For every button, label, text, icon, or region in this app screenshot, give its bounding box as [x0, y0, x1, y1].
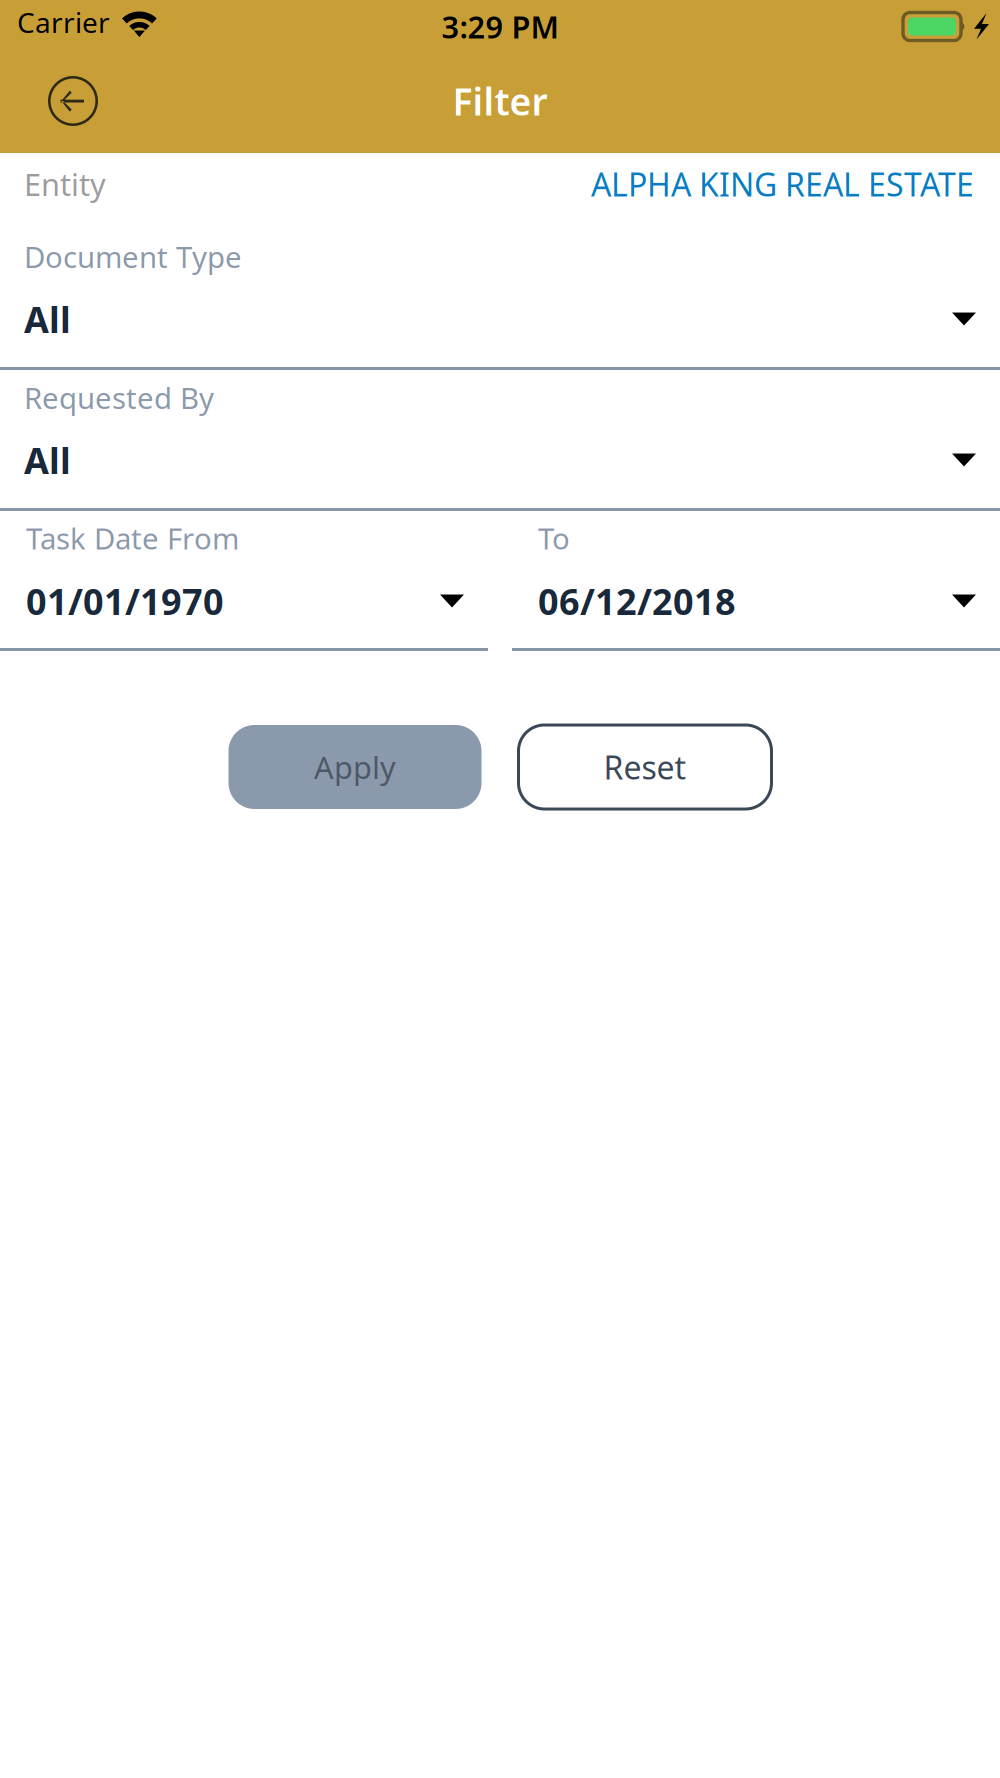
staticText: Entity — [24, 164, 106, 204]
staticText: ALPHA KING REAL ESTATE — [591, 163, 974, 205]
staticText: Task Date From — [26, 518, 239, 557]
button[interactable]: Task Date From — [0, 511, 488, 651]
staticText: 01/01/1970 — [26, 577, 224, 625]
staticText: To — [538, 518, 570, 557]
staticText: Reset — [603, 746, 686, 788]
staticText: All — [24, 295, 71, 343]
staticText: Requested By — [24, 378, 214, 417]
button[interactable]: Document Type — [0, 227, 1000, 367]
staticText: 06/12/2018 — [538, 577, 736, 625]
staticText: 3:29 PM — [441, 6, 558, 47]
button[interactable]: Reset — [518, 725, 771, 809]
staticText: Carrier — [17, 3, 110, 41]
staticText: Apply — [314, 747, 396, 787]
button[interactable]: ALPHA KING REAL ESTATE — [591, 163, 974, 205]
button[interactable]: To — [512, 511, 1000, 651]
button[interactable]: Back — [0, 53, 120, 153]
button[interactable]: Requested By — [0, 370, 1000, 508]
button[interactable]: Apply — [228, 725, 481, 809]
staticText: All — [24, 436, 71, 484]
staticText: Filter — [452, 76, 547, 126]
staticText: Document Type — [24, 237, 242, 276]
